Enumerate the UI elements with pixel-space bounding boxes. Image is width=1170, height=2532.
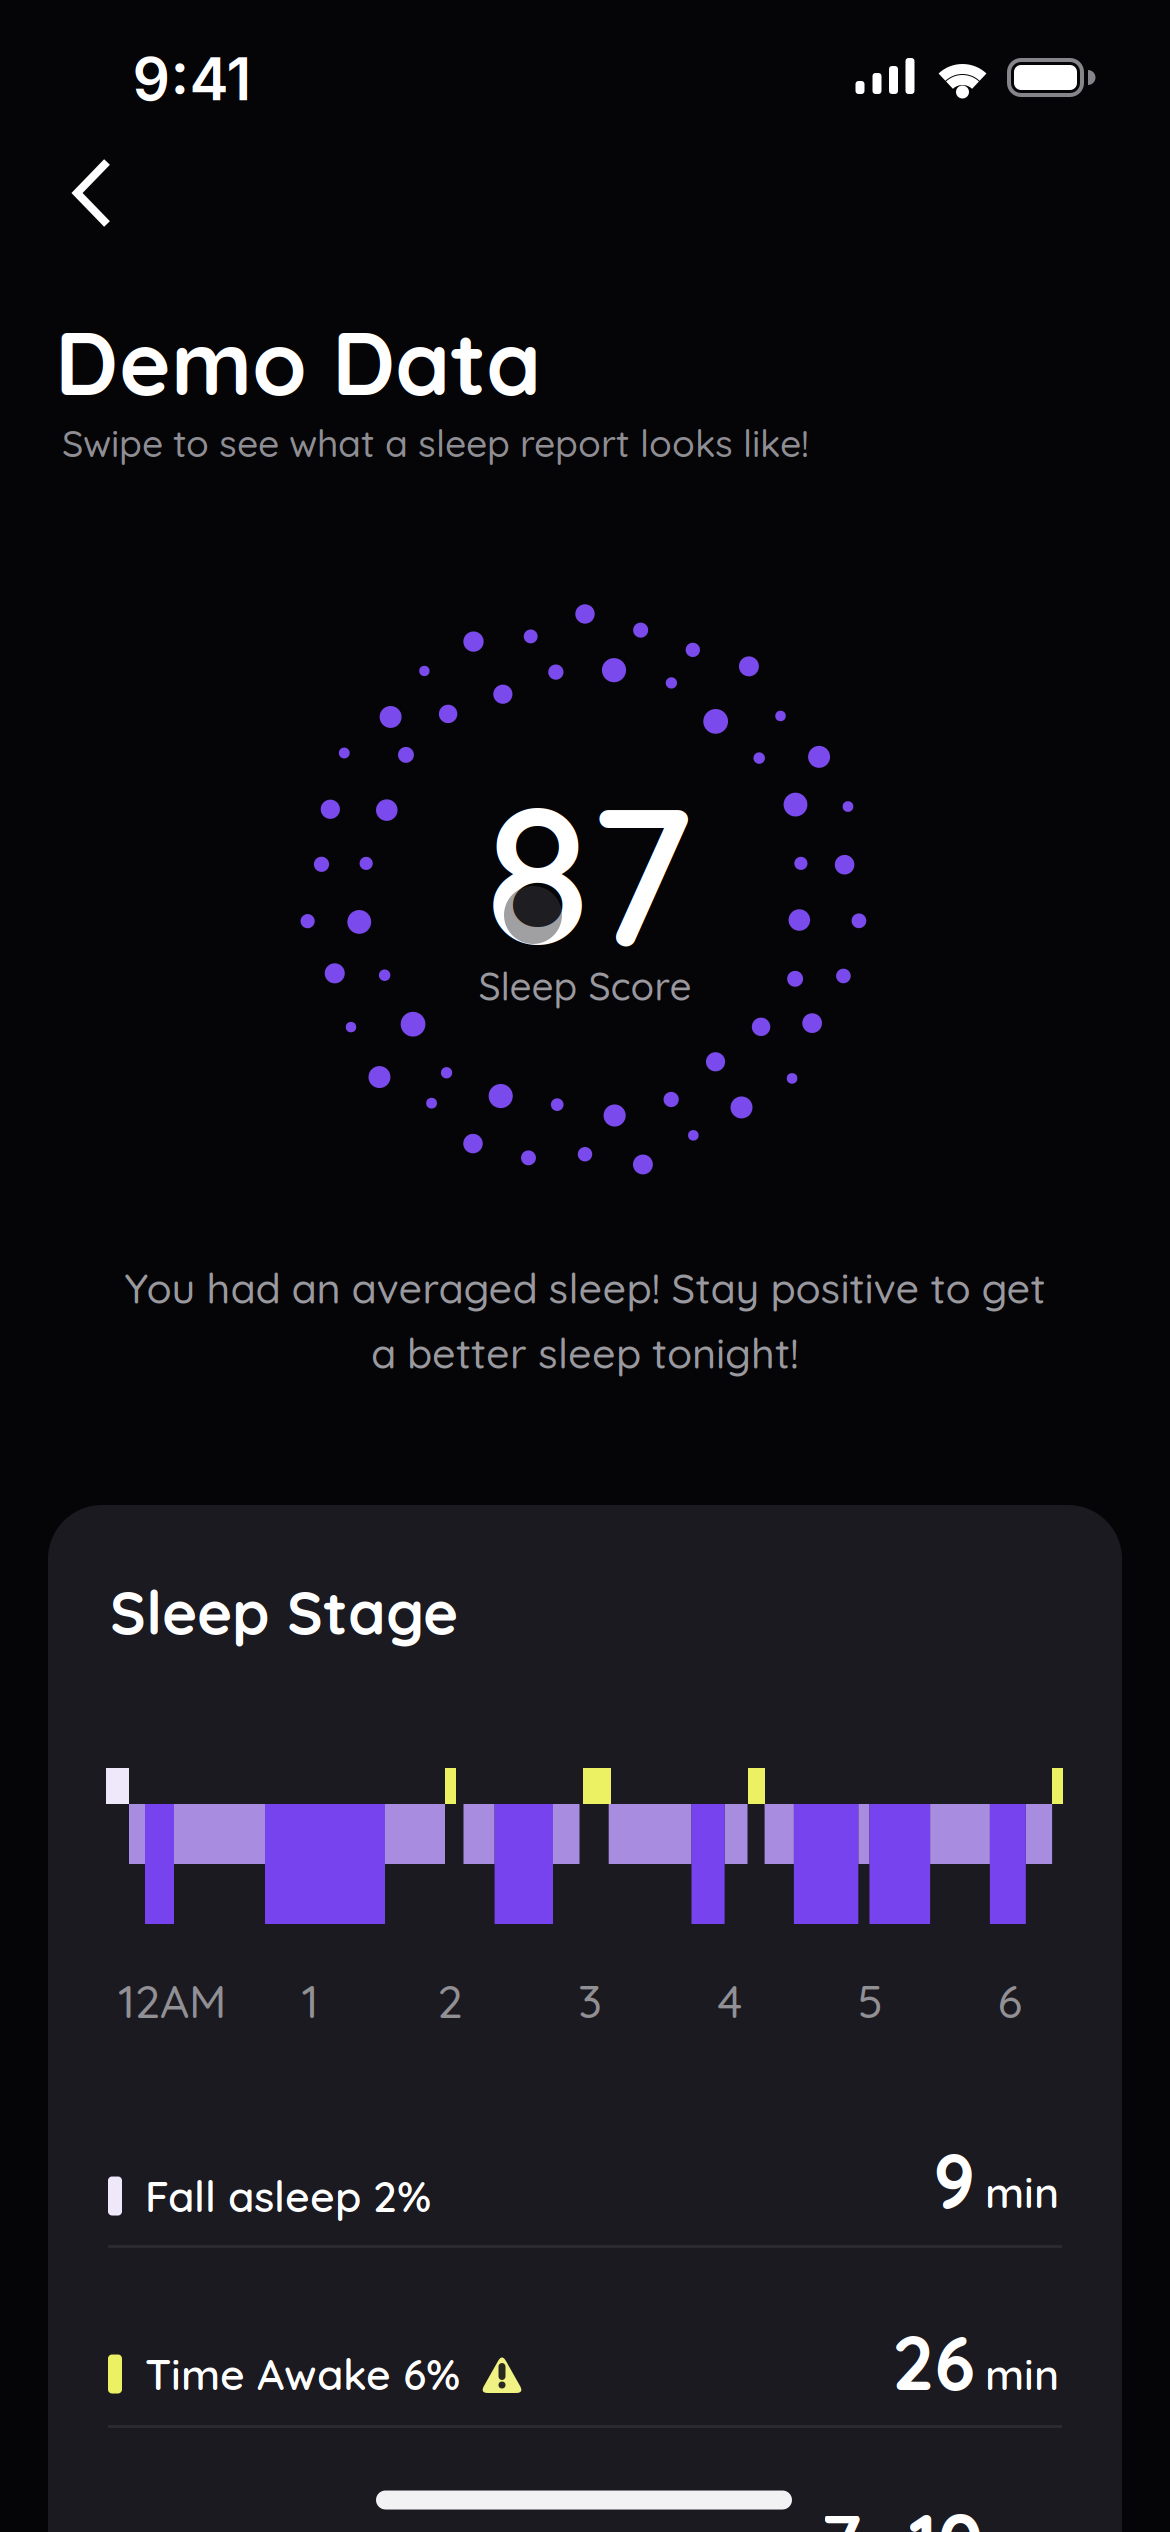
staticText: Swipe to see what a sleep report looks l… xyxy=(62,420,809,466)
staticText: Sleep Stage xyxy=(110,1574,458,1649)
staticText: Fall asleep 2% xyxy=(145,2169,431,2223)
staticText: min xyxy=(985,2347,1059,2401)
staticText: 3 xyxy=(578,1973,602,2029)
staticText: Time Awake 6% xyxy=(145,2347,460,2401)
button[interactable] xyxy=(49,148,139,238)
staticText: 87 xyxy=(484,750,693,994)
staticText: 10 xyxy=(908,2493,983,2532)
staticText: 2 xyxy=(437,1973,462,2029)
staticText: 7 xyxy=(820,2493,861,2532)
staticText: 5 xyxy=(857,1973,882,2029)
staticText: a better sleep tonight! xyxy=(371,1327,799,1379)
staticText: You had an averaged sleep! Stay positive… xyxy=(124,1262,1045,1314)
staticText: 4 xyxy=(717,1973,742,2029)
staticText: 9:41 xyxy=(132,43,251,114)
staticText: Demo Data xyxy=(55,307,541,417)
staticText: min xyxy=(985,2165,1059,2219)
staticText: 26 xyxy=(892,2315,975,2409)
staticText: 1 xyxy=(301,1973,318,2029)
staticText: 6 xyxy=(997,1973,1022,2029)
staticText: Sleep Score xyxy=(478,962,691,1010)
staticText: 9 xyxy=(933,2133,975,2227)
staticText: 12AM xyxy=(118,1973,226,2029)
